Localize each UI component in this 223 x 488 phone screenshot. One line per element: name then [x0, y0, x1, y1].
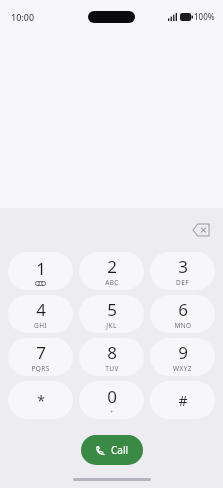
- staticText: 7: [36, 341, 46, 364]
- staticText: 9: [178, 341, 188, 364]
- staticText: 5: [107, 298, 117, 321]
- button[interactable]: 1: [8, 252, 73, 290]
- staticText: Call: [111, 443, 129, 457]
- staticText: 8: [107, 341, 117, 364]
- staticText: #: [178, 391, 188, 410]
- staticText: DEF: [176, 278, 189, 287]
- button[interactable]: 2: [79, 252, 144, 290]
- staticText: 4: [36, 298, 46, 321]
- staticText: ABC: [105, 278, 119, 287]
- button[interactable]: 9: [150, 338, 215, 376]
- staticText: 1: [36, 257, 46, 280]
- button[interactable]: 6: [150, 295, 215, 333]
- button[interactable]: 5: [79, 295, 144, 333]
- staticText: 100%: [194, 11, 215, 22]
- staticText: *: [37, 391, 45, 410]
- staticText: 6: [178, 298, 188, 321]
- staticText: TUV: [105, 364, 119, 373]
- staticText: WXYZ: [173, 364, 192, 373]
- button[interactable]: #: [150, 381, 215, 419]
- staticText: 2: [107, 255, 117, 278]
- staticText: +: [110, 408, 114, 416]
- button[interactable]: 0: [79, 381, 144, 419]
- button[interactable]: 3: [150, 252, 215, 290]
- staticText: 10:00: [11, 11, 35, 23]
- staticText: JKL: [106, 321, 117, 330]
- staticText: PQRS: [31, 364, 50, 373]
- button[interactable]: Call: [81, 435, 143, 465]
- staticText: MNO: [174, 321, 192, 330]
- staticText: GHI: [34, 321, 47, 330]
- button[interactable]: Backspace: [185, 214, 217, 246]
- button[interactable]: 4: [8, 295, 73, 333]
- button[interactable]: 7: [8, 338, 73, 376]
- button[interactable]: *: [8, 381, 73, 419]
- button[interactable]: 8: [79, 338, 144, 376]
- staticText: 0: [107, 385, 117, 408]
- staticText: 3: [178, 255, 188, 278]
